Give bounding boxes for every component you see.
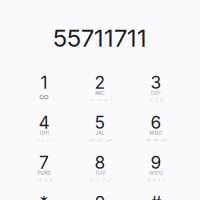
button[interactable]: 1 <box>17 75 71 113</box>
staticText: TUV <box>95 170 105 176</box>
staticText: س ش ص <box>88 136 112 142</box>
button[interactable]: 9 <box>129 155 183 193</box>
staticText: JKL <box>95 130 104 136</box>
staticText: 6 <box>150 112 161 133</box>
staticText: 1 <box>40 72 47 93</box>
staticText: 3 <box>150 72 161 93</box>
button[interactable]: 8 <box>73 155 127 193</box>
staticText: # <box>150 192 161 200</box>
staticText: DEF <box>151 90 161 96</box>
staticText: 8 <box>94 152 105 173</box>
staticText: GHI <box>39 130 48 136</box>
button[interactable]: 4 <box>17 115 71 153</box>
staticText: 0 <box>94 192 105 200</box>
staticText: ا ب ت ث <box>89 96 111 102</box>
staticText: ق ك ل م <box>89 176 110 182</box>
staticText: ع غ ف <box>36 176 52 182</box>
staticText: 4 <box>38 112 49 133</box>
staticText: MNO <box>149 130 162 136</box>
staticText: ج ح خ <box>149 96 162 102</box>
staticText: 5 <box>94 112 105 133</box>
button[interactable]: # <box>129 195 183 200</box>
staticText: 9 <box>150 152 161 173</box>
button[interactable]: 0 <box>73 195 127 200</box>
staticText: ض ط ظ <box>146 136 166 142</box>
staticText: 7 <box>39 152 49 173</box>
button[interactable]: 2 <box>73 75 127 113</box>
staticText: WXYZ <box>149 170 163 176</box>
button[interactable]: 6 <box>129 115 183 153</box>
staticText: PQRS <box>37 170 50 176</box>
staticText: 2 <box>94 72 105 93</box>
staticText: ABC <box>95 90 105 96</box>
button[interactable]: 55711711 <box>20 26 180 50</box>
button[interactable]: * <box>17 195 71 200</box>
button[interactable]: 5 <box>73 115 127 153</box>
staticText: د ذ ر ز <box>36 136 52 142</box>
staticText: * <box>39 192 48 200</box>
button[interactable]: 7 <box>17 155 71 193</box>
staticText: ن ه و ي <box>146 176 166 182</box>
button[interactable]: 3 <box>129 75 183 113</box>
staticText: 55711711 <box>53 23 147 52</box>
